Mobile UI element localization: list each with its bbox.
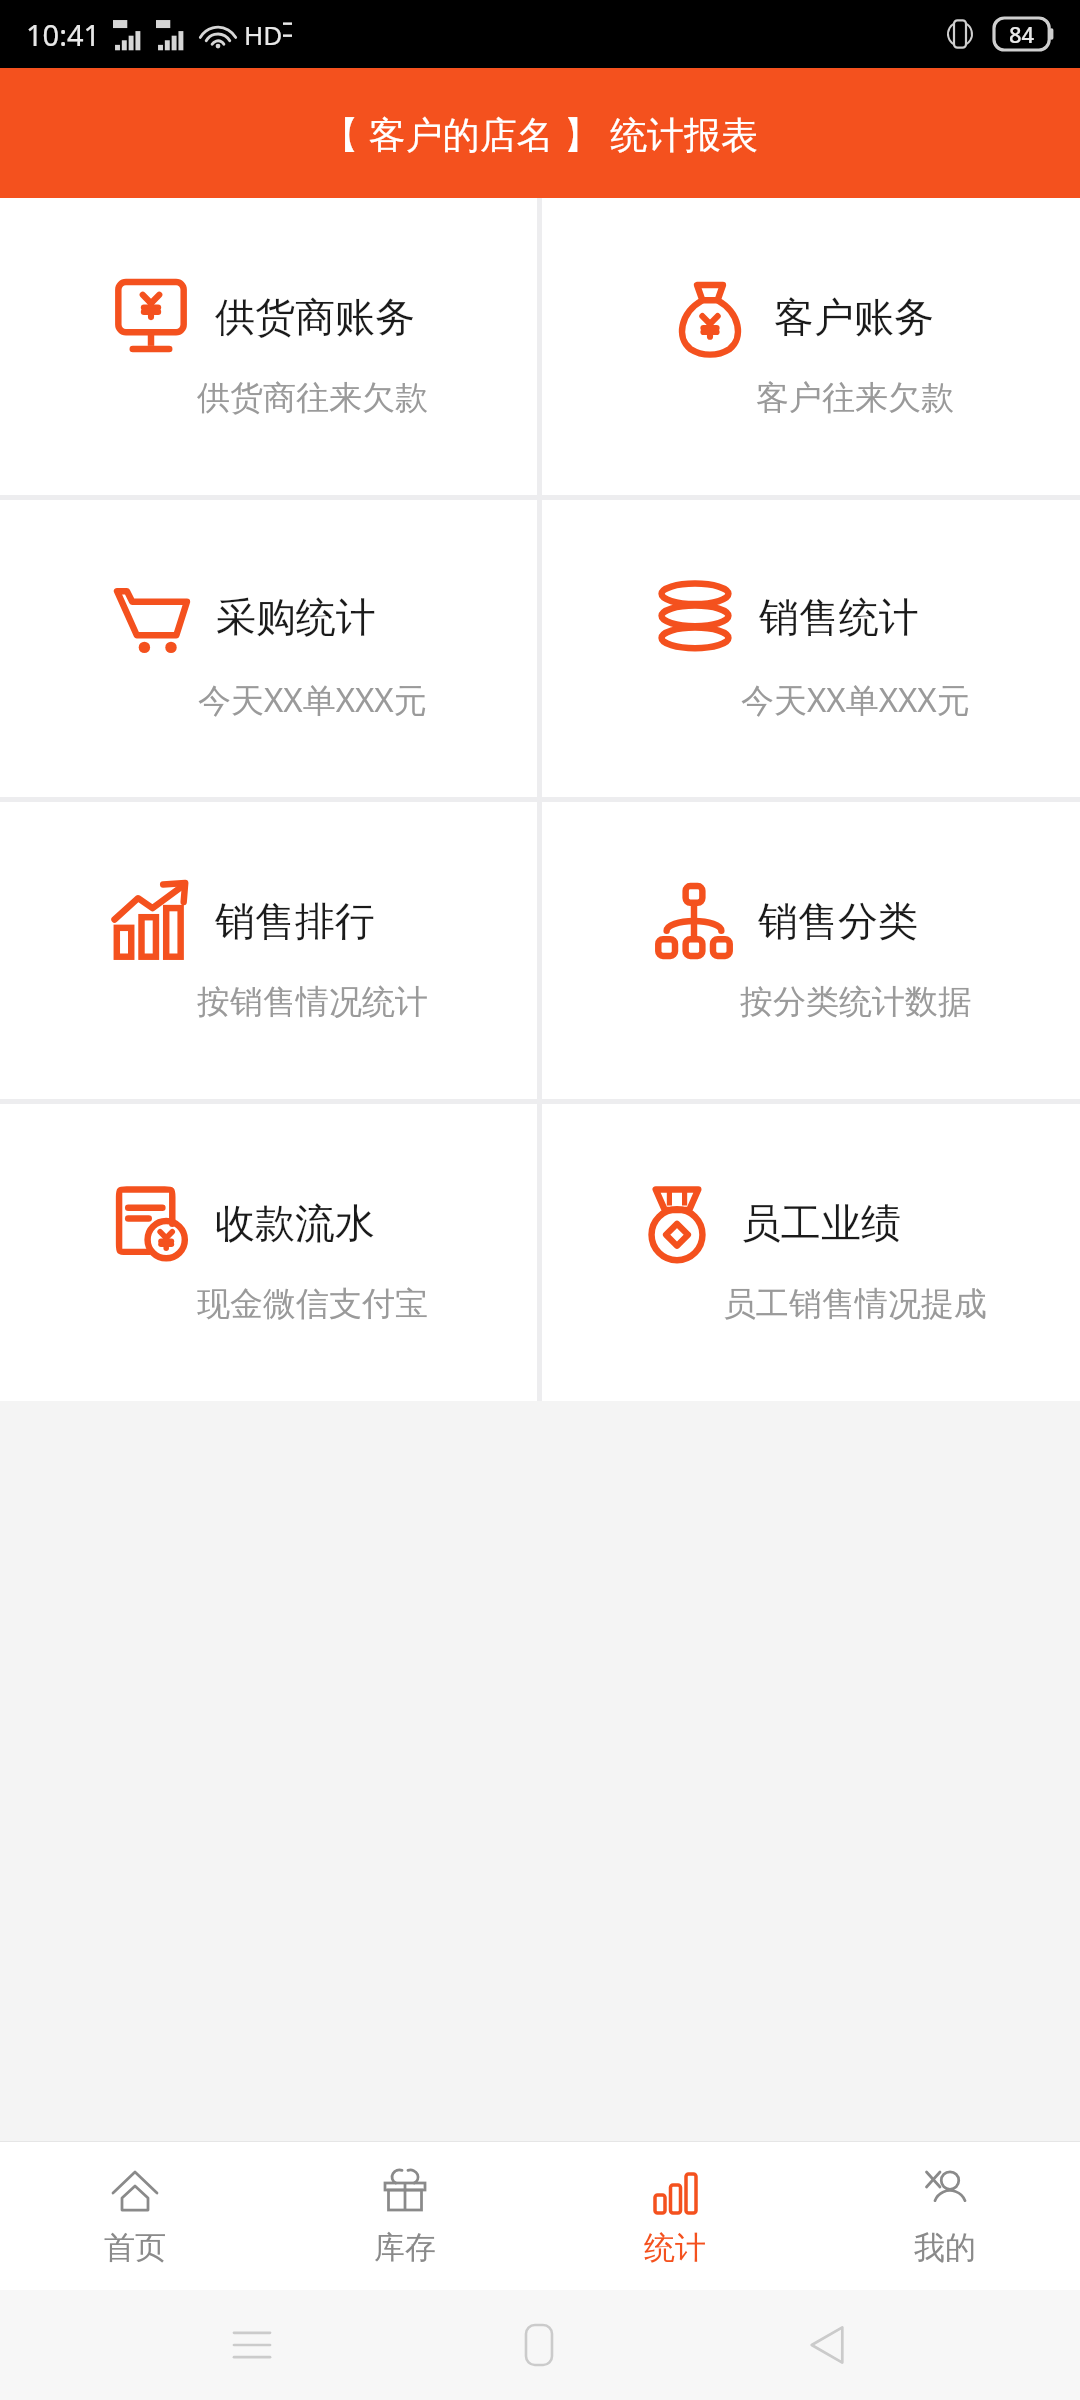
button[interactable]: 我的 [810, 2142, 1080, 2290]
staticText: 客户账务 [774, 292, 934, 342]
staticText: 统计 [644, 2228, 706, 2267]
button[interactable]: Home [504, 2310, 574, 2380]
staticText: 供货商往来欠款 [197, 377, 428, 419]
staticText: 销售分类 [758, 896, 918, 946]
staticText: 采购统计 [216, 592, 376, 642]
button[interactable]: 销售分类 [542, 802, 1080, 1099]
staticText: 员工销售情况提成 [723, 1283, 987, 1325]
button[interactable]: 统计 [540, 2142, 810, 2290]
staticText: 收款流水 [215, 1198, 375, 1248]
button[interactable]: 库存 [270, 2142, 540, 2290]
staticText: 销售统计 [759, 592, 919, 642]
staticText: 我的 [914, 2228, 976, 2267]
button[interactable]: 销售排行 [0, 802, 537, 1099]
other: Vibrate mode [940, 17, 980, 51]
staticText: 按分类统计数据 [740, 981, 971, 1023]
staticText: 84 [1009, 19, 1035, 49]
staticText: 今天XX单XXX元 [741, 677, 970, 722]
button[interactable]: 收款流水 [0, 1104, 537, 1401]
staticText: 按销售情况统计 [197, 981, 428, 1023]
button[interactable]: 首页 [0, 2142, 270, 2290]
staticText: 【 客户的店名 】 统计报表 [322, 108, 758, 159]
staticText: 库存 [374, 2228, 436, 2267]
button[interactable]: 采购统计 [0, 500, 537, 797]
button[interactable]: 客户账务 [542, 198, 1080, 495]
button[interactable]: 销售统计 [542, 500, 1080, 797]
staticText: HD [244, 17, 283, 52]
staticText: 客户往来欠款 [756, 377, 954, 419]
button[interactable]: 供货商账务 [0, 198, 537, 495]
staticText: 10:41 [26, 15, 101, 54]
staticText: 供货商账务 [215, 292, 415, 342]
button[interactable]: Recent apps [217, 2310, 287, 2380]
staticText: 员工业绩 [741, 1198, 901, 1248]
staticText: 今天XX单XXX元 [198, 677, 427, 722]
button[interactable]: Back [792, 2310, 862, 2380]
staticText: 首页 [104, 2228, 166, 2267]
staticText: 销售排行 [215, 896, 375, 946]
staticText: 现金微信支付宝 [197, 1283, 428, 1325]
button[interactable]: 员工业绩 [542, 1104, 1080, 1401]
